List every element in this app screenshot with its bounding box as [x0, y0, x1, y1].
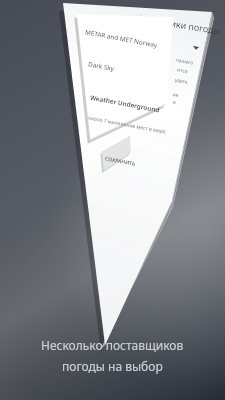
staticText: погоды на выбор: [62, 358, 163, 374]
button[interactable]: Сохранить: [62, 47, 110, 61]
staticText: Несколько поставщиков: [41, 337, 184, 353]
